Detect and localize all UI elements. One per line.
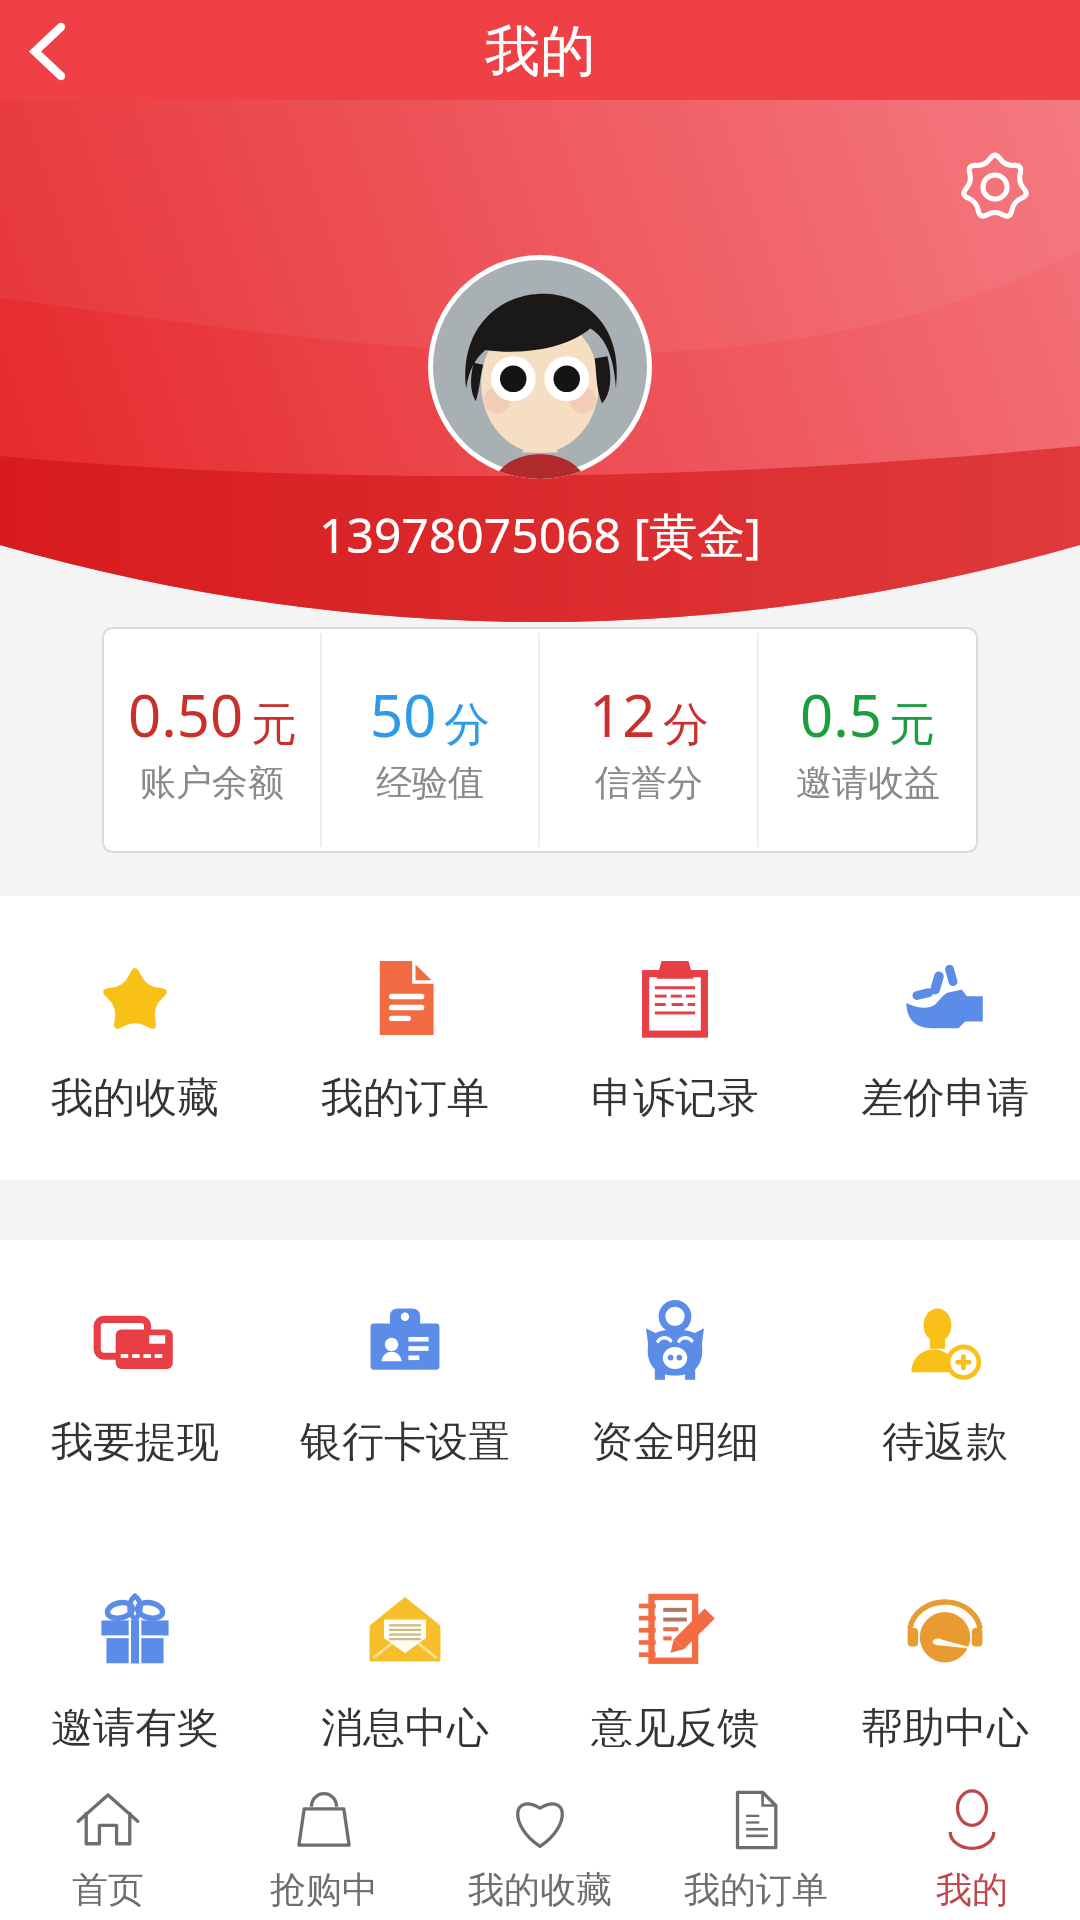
button[interactable]: Settings: [950, 142, 1040, 232]
staticText: 信誉分: [595, 760, 703, 805]
staticText: 我的订单: [321, 1072, 489, 1125]
staticText: 我的: [485, 17, 595, 86]
button[interactable]: 50: [322, 629, 538, 851]
button[interactable]: 邀请有奖: [0, 1520, 270, 1775]
staticText: 我要提现: [51, 1416, 219, 1469]
button[interactable]: 我的收藏: [0, 896, 270, 1180]
button[interactable]: 我的订单: [270, 896, 540, 1180]
button[interactable]: 申诉记录: [540, 896, 810, 1180]
staticText: 消息中心: [321, 1702, 489, 1755]
staticText: 0.50: [128, 675, 244, 754]
staticText: 邀请收益: [796, 760, 940, 805]
staticText: 账户余额: [140, 760, 284, 805]
button[interactable]: 0.50: [104, 629, 320, 851]
staticText: 资金明细: [591, 1416, 759, 1469]
button[interactable]: 12: [540, 629, 757, 851]
button[interactable]: 我的订单: [648, 1775, 864, 1920]
staticText: 邀请有奖: [51, 1702, 219, 1755]
button[interactable]: 我的收藏: [432, 1775, 648, 1920]
button[interactable]: 我要提现: [0, 1240, 270, 1520]
staticText: 我的: [936, 1867, 1008, 1912]
button[interactable]: 抢购中: [216, 1775, 432, 1920]
staticText: 13978075068 [黄金]: [319, 502, 762, 568]
staticText: 分: [444, 696, 490, 754]
button[interactable]: 资金明细: [540, 1240, 810, 1520]
staticText: 我的订单: [684, 1867, 828, 1912]
button[interactable]: 差价申请: [810, 896, 1080, 1180]
staticText: 我的收藏: [468, 1867, 612, 1912]
button[interactable]: 意见反馈: [540, 1520, 810, 1775]
staticText: 分: [663, 696, 709, 754]
staticText: 50: [370, 675, 437, 754]
button[interactable]: 消息中心: [270, 1520, 540, 1775]
button[interactable]: 首页: [0, 1775, 216, 1920]
staticText: 元: [889, 696, 935, 754]
staticText: 我的收藏: [51, 1072, 219, 1125]
button[interactable]: 银行卡设置: [270, 1240, 540, 1520]
button[interactable]: 待返款: [810, 1240, 1080, 1520]
staticText: 首页: [72, 1867, 144, 1912]
button[interactable]: Back: [0, 0, 96, 102]
button[interactable]: 我的: [864, 1775, 1080, 1920]
staticText: 意见反馈: [591, 1702, 759, 1755]
staticText: 抢购中: [270, 1867, 378, 1912]
button[interactable]: Profile photo: [428, 255, 652, 479]
staticText: 差价申请: [861, 1072, 1029, 1125]
button[interactable]: 0.5: [759, 629, 976, 851]
staticText: 0.5: [800, 675, 882, 754]
staticText: 元: [251, 696, 297, 754]
staticText: 经验值: [376, 760, 484, 805]
button[interactable]: 帮助中心: [810, 1520, 1080, 1775]
staticText: 申诉记录: [591, 1072, 759, 1125]
staticText: 银行卡设置: [300, 1416, 510, 1469]
staticText: 12: [589, 675, 656, 754]
staticText: 帮助中心: [861, 1702, 1029, 1755]
staticText: 待返款: [882, 1416, 1008, 1469]
